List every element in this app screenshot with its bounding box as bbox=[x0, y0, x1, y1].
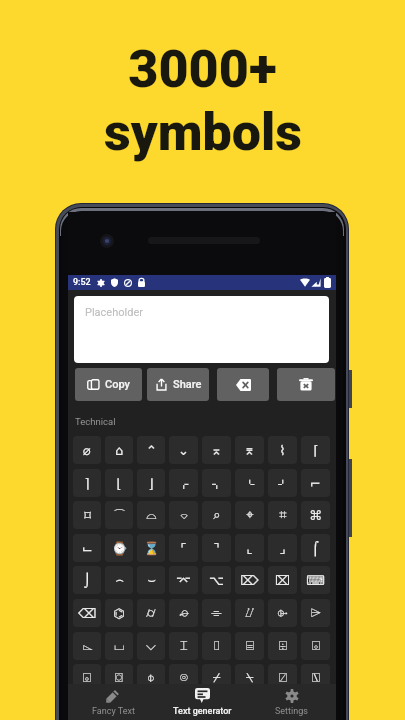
button[interactable]: ⌻ bbox=[73, 664, 101, 692]
button[interactable]: ⍁ bbox=[268, 664, 297, 692]
staticText: ⌭ bbox=[146, 607, 156, 620]
button[interactable]: ⌀ bbox=[73, 436, 101, 464]
button[interactable]: ⌞ bbox=[235, 534, 264, 562]
button[interactable]: ⌍ bbox=[202, 469, 231, 497]
staticText: ⌼ bbox=[115, 672, 123, 685]
staticText: ⌤ bbox=[176, 573, 191, 588]
staticText: ⍁ bbox=[279, 672, 287, 685]
button[interactable]: ⌥ bbox=[202, 566, 231, 594]
button[interactable]: ⌶ bbox=[169, 632, 198, 660]
button[interactable]: ⌿ bbox=[202, 664, 231, 692]
button[interactable]: ⌌ bbox=[169, 469, 198, 497]
button[interactable]: ⌷ bbox=[202, 632, 231, 660]
button[interactable]: ⌒ bbox=[105, 501, 133, 529]
staticText: ⍂ bbox=[312, 672, 320, 685]
staticText: Settings bbox=[275, 706, 308, 717]
staticText: ⌀ bbox=[83, 443, 91, 458]
button[interactable]: ⌆ bbox=[235, 436, 264, 464]
staticText: ⌅ bbox=[211, 443, 222, 458]
staticText: ⌸ bbox=[246, 640, 254, 653]
button[interactable]: ⌅ bbox=[202, 436, 231, 464]
button[interactable]: ⌵ bbox=[137, 632, 165, 660]
button[interactable]: ⌃ bbox=[137, 436, 165, 464]
staticText: ⌉ bbox=[84, 476, 90, 491]
button[interactable]: ⌛ bbox=[137, 534, 165, 562]
button[interactable]: ⌔ bbox=[169, 501, 198, 529]
staticText: ⌱ bbox=[277, 607, 288, 620]
button[interactable]: ⌡ bbox=[73, 566, 101, 594]
button[interactable]: Backspace bbox=[217, 368, 269, 401]
button[interactable]: Share bbox=[147, 368, 209, 401]
staticText: ⌦ bbox=[240, 573, 259, 588]
button[interactable]: ⍀ bbox=[235, 664, 264, 692]
button[interactable]: Copy bbox=[75, 368, 142, 401]
button[interactable]: ⌇ bbox=[268, 436, 297, 464]
button[interactable]: ⌲ bbox=[301, 599, 330, 627]
button[interactable]: ⌐ bbox=[301, 469, 330, 497]
button[interactable]: ⌜ bbox=[169, 534, 198, 562]
staticText: ⌾ bbox=[180, 672, 188, 685]
button[interactable]: ⌮ bbox=[169, 599, 198, 627]
button[interactable]: ⌴ bbox=[105, 632, 133, 660]
button[interactable]: ⌚ bbox=[105, 534, 133, 562]
button[interactable]: ⌸ bbox=[235, 632, 264, 660]
button[interactable]: ⌎ bbox=[235, 469, 264, 497]
button[interactable]: ⍂ bbox=[301, 664, 330, 692]
button[interactable]: ⌟ bbox=[268, 534, 297, 562]
staticText: ⌐ bbox=[310, 476, 321, 491]
button[interactable]: ⌂ bbox=[105, 436, 133, 464]
button[interactable]: ⌢ bbox=[105, 566, 133, 594]
button[interactable]: ⌱ bbox=[268, 599, 297, 627]
staticText: ⌮ bbox=[179, 607, 189, 620]
button[interactable]: ⌨ bbox=[301, 566, 330, 594]
staticText: ⌆ bbox=[244, 443, 255, 458]
staticText: ⌯ bbox=[211, 607, 222, 620]
staticText: ⌝ bbox=[213, 541, 220, 556]
button[interactable]: ⌝ bbox=[202, 534, 231, 562]
staticText: ⌛ bbox=[143, 541, 160, 556]
button[interactable]: ⌬ bbox=[105, 599, 133, 627]
button[interactable]: ⌦ bbox=[235, 566, 264, 594]
button[interactable]: ⌓ bbox=[137, 501, 165, 529]
staticText: ⌖ bbox=[246, 509, 254, 522]
button[interactable]: ⌙ bbox=[73, 534, 101, 562]
staticText: Fancy Text bbox=[92, 706, 135, 717]
button[interactable]: ⌭ bbox=[137, 599, 165, 627]
button[interactable]: ⌽ bbox=[137, 664, 165, 692]
button[interactable]: ⌧ bbox=[268, 566, 297, 594]
button[interactable]: Placeholder bbox=[74, 296, 329, 363]
staticText: ⌬ bbox=[113, 606, 125, 621]
button[interactable]: ⌘ bbox=[301, 501, 330, 529]
button[interactable]: Text generator bbox=[158, 684, 247, 720]
button[interactable]: ⌊ bbox=[105, 469, 133, 497]
button[interactable]: ⌺ bbox=[301, 632, 330, 660]
button[interactable]: ⌯ bbox=[202, 599, 231, 627]
button[interactable]: ⌹ bbox=[268, 632, 297, 660]
button[interactable]: ⌉ bbox=[73, 469, 101, 497]
button[interactable]: ⌋ bbox=[137, 469, 165, 497]
button[interactable]: ⌈ bbox=[301, 436, 330, 464]
button[interactable]: ⌗ bbox=[268, 501, 297, 529]
button[interactable]: ⌾ bbox=[169, 664, 198, 692]
staticText: ⌂ bbox=[115, 443, 124, 458]
button[interactable]: ⌰ bbox=[235, 599, 264, 627]
staticText: ⌋ bbox=[148, 476, 154, 491]
button[interactable]: ⌳ bbox=[73, 632, 101, 660]
staticText: ⌜ bbox=[180, 541, 187, 556]
button[interactable]: ⌑ bbox=[73, 501, 101, 529]
button[interactable]: ⌄ bbox=[169, 436, 198, 464]
button[interactable]: Settings bbox=[247, 684, 336, 720]
button[interactable]: ⌕ bbox=[202, 501, 231, 529]
button[interactable]: ⌣ bbox=[137, 566, 165, 594]
button[interactable]: ⌼ bbox=[105, 664, 133, 692]
button[interactable]: ⌤ bbox=[169, 566, 198, 594]
button[interactable]: ⌫ bbox=[73, 599, 101, 627]
staticText: ⌙ bbox=[82, 541, 93, 556]
button[interactable]: Fancy Text bbox=[68, 684, 158, 720]
button[interactable]: Clear all bbox=[277, 368, 335, 401]
button[interactable]: ⌠ bbox=[301, 534, 330, 562]
button[interactable]: ⌖ bbox=[235, 501, 264, 529]
staticText: ⌲ bbox=[310, 607, 321, 620]
button[interactable]: ⌏ bbox=[268, 469, 297, 497]
staticText: ⌄ bbox=[178, 443, 189, 458]
